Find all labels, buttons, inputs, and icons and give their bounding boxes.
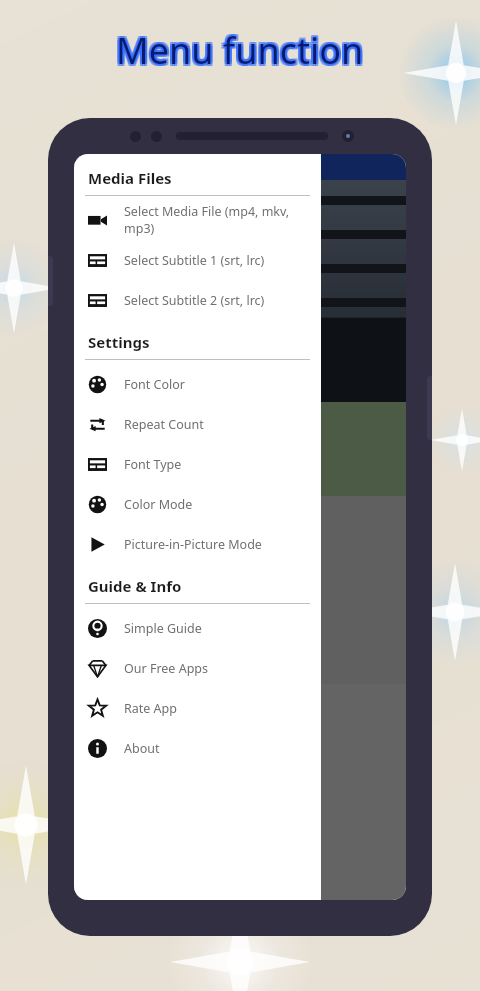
staticText: Menu function (114, 24, 362, 73)
staticText: nger than (84, 604, 159, 626)
button[interactable]: Our Free Apps (85, 648, 310, 688)
button[interactable]: Font Type (85, 444, 310, 484)
staticText: Select Subtitle 1 (srt, lrc) (124, 252, 265, 269)
staticText: thumpin' (84, 510, 152, 532)
other: Repeat Count (88, 415, 107, 434)
staticText: Menu function (118, 24, 366, 73)
staticText: Rate App (124, 700, 177, 717)
other: Picture-in-Picture Mode (88, 535, 107, 554)
other: Select Media File (mp4, mkv, mp3) (88, 211, 107, 230)
staticText: Our Free Apps (124, 660, 209, 677)
button[interactable]: About (85, 728, 310, 768)
staticText: Menu function (118, 28, 366, 77)
staticText: Media Files (88, 168, 172, 188)
staticText: Simple Guide (124, 620, 202, 637)
other: About (88, 739, 107, 758)
other: Font Type (88, 455, 107, 474)
other: Simple Guide (88, 619, 107, 638)
button[interactable]: Rate App (85, 688, 310, 728)
staticText: Menu function (114, 28, 362, 77)
other: Color Mode (88, 495, 107, 514)
button[interactable]: Select Subtitle 1 (srt, lrc) (85, 240, 310, 280)
staticText: Select Subtitle 2 (srt, lrc) (124, 292, 265, 309)
staticText: Menu function (116, 28, 364, 77)
staticText: Font Color (124, 376, 185, 393)
other: Select Subtitle 1 (srt, lrc) (88, 251, 107, 270)
staticText: About (124, 740, 160, 757)
staticText: Settings (88, 332, 150, 352)
staticText: Color Mode (124, 496, 193, 513)
other: Select Subtitle 2 (srt, lrc) (88, 291, 107, 310)
staticText: Guide & Info (88, 576, 182, 596)
staticText: Picture-in-Picture Mode (124, 536, 262, 553)
staticText: 01:12 (88, 366, 122, 384)
staticText: Repeat Count (124, 416, 204, 433)
button[interactable]: Repeat Count (85, 404, 310, 444)
other: Rate App (88, 699, 107, 718)
staticText: Font Type (124, 456, 182, 473)
staticText: Menu function (116, 24, 364, 73)
staticText: Menu function (114, 26, 362, 75)
other: Font Color (88, 375, 107, 394)
staticText: rake (84, 416, 117, 438)
button[interactable]: Simple Guide (85, 608, 310, 648)
button[interactable]: Picture-in-Picture Mode (85, 524, 310, 564)
button[interactable]: Select Media File (mp4, mkv, mp3) (85, 200, 310, 240)
staticText: 금씩 (84, 446, 116, 466)
staticText: Menu function (116, 26, 364, 75)
other: Our Free Apps (88, 659, 107, 678)
staticText: Select Media File (mp4, mkv, mp3) (124, 203, 310, 237)
button[interactable]: Select Subtitle 2 (srt, lrc) (85, 280, 310, 320)
staticText: 가 (84, 540, 100, 560)
button[interactable]: Font Color (85, 364, 310, 404)
staticText: Menu function (118, 26, 366, 75)
button[interactable]: Color Mode (85, 484, 310, 524)
